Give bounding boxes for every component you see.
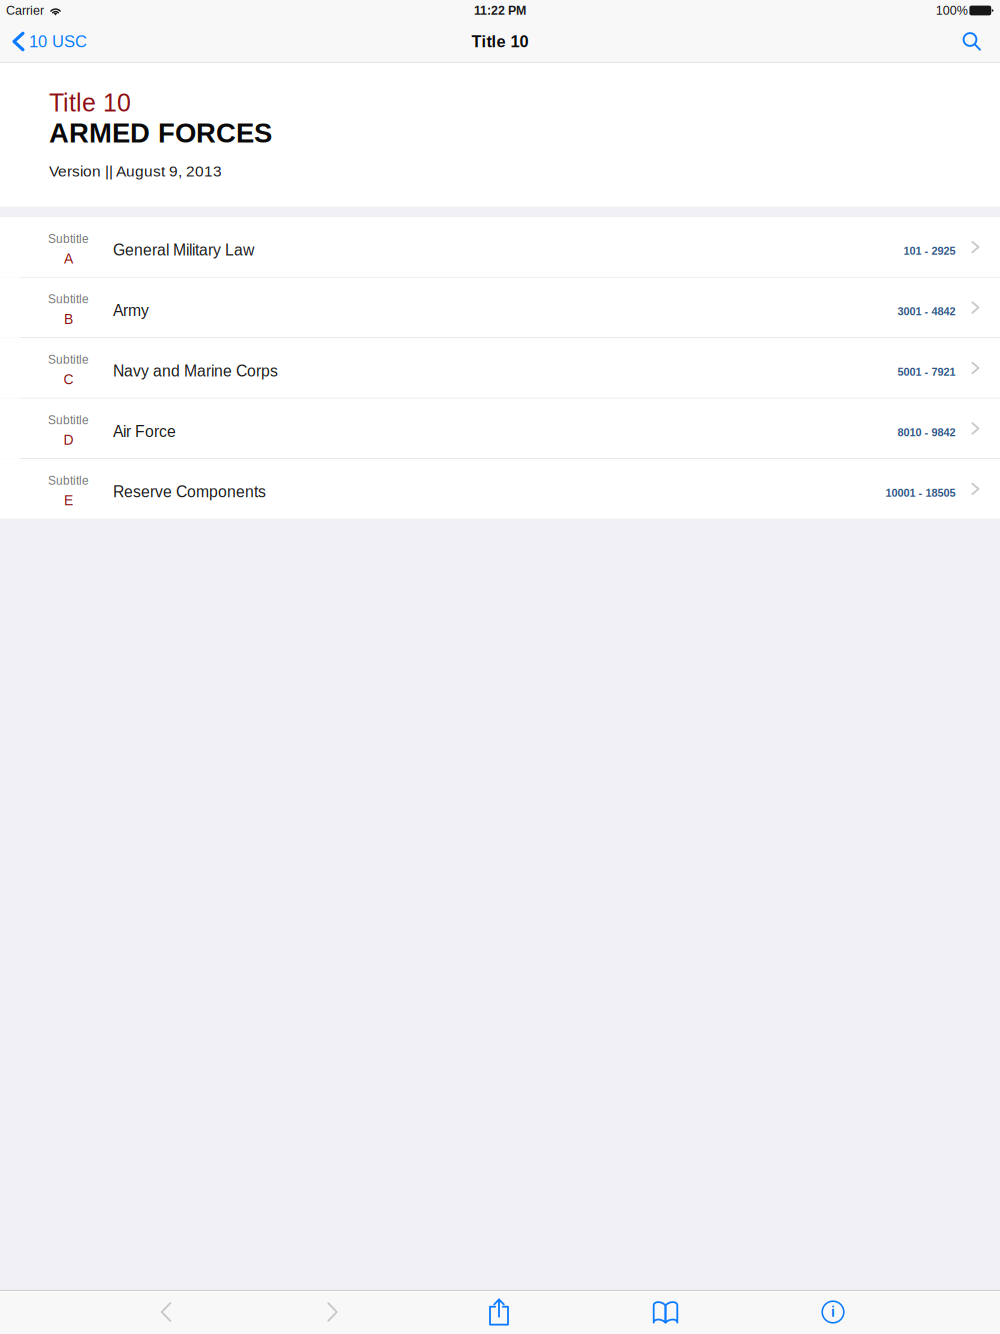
staticText: 5001 - 7921 (897, 366, 955, 378)
button[interactable]: Search (947, 21, 1000, 62)
staticText: Reserve Components (113, 483, 266, 501)
staticText: 10001 - 18505 (885, 487, 955, 499)
staticText: Version || August 9, 2013 (49, 162, 222, 180)
button[interactable]: Subtitle (0, 459, 1000, 519)
staticText: Army (113, 302, 149, 319)
button[interactable]: Back (83, 1290, 249, 1334)
staticText: 8010 - 9842 (897, 426, 955, 438)
button[interactable]: Bookmarks (582, 1290, 749, 1334)
staticText: Subtitle (48, 232, 89, 245)
staticText: Subtitle (48, 413, 89, 427)
staticText: 3001 - 4842 (897, 305, 955, 318)
staticText: Air Force (113, 423, 176, 440)
staticText: C (63, 372, 73, 387)
staticText: A (64, 251, 73, 266)
button[interactable]: 10 USC (0, 21, 101, 62)
staticText: 10 USC (29, 32, 87, 51)
button[interactable]: Subtitle (0, 399, 1000, 458)
staticText: i (831, 1304, 835, 1320)
button[interactable]: Subtitle (0, 338, 1000, 398)
staticText: Subtitle (48, 353, 89, 366)
button[interactable]: Share (416, 1290, 582, 1334)
staticText: E (64, 493, 73, 508)
staticText: Subtitle (48, 293, 89, 306)
staticText: Navy and Marine Corps (113, 362, 278, 380)
staticText: General Military Law (113, 241, 254, 259)
staticText: 101 - 2925 (903, 245, 955, 257)
staticText: ARMED FORCES (49, 118, 272, 148)
button[interactable]: Subtitle (0, 217, 1000, 277)
staticText: Title 10 (49, 89, 131, 117)
staticText: 11:22 PM (474, 4, 526, 17)
button[interactable]: Forward (249, 1290, 416, 1334)
staticText: Title 10 (471, 32, 528, 51)
staticText: Subtitle (48, 474, 89, 487)
staticText: 100% (936, 3, 968, 17)
button[interactable]: Information (749, 1290, 917, 1334)
staticText: Carrier (6, 3, 44, 17)
staticText: D (63, 432, 73, 448)
button[interactable]: Subtitle (0, 278, 1000, 337)
staticText: B (64, 311, 73, 327)
